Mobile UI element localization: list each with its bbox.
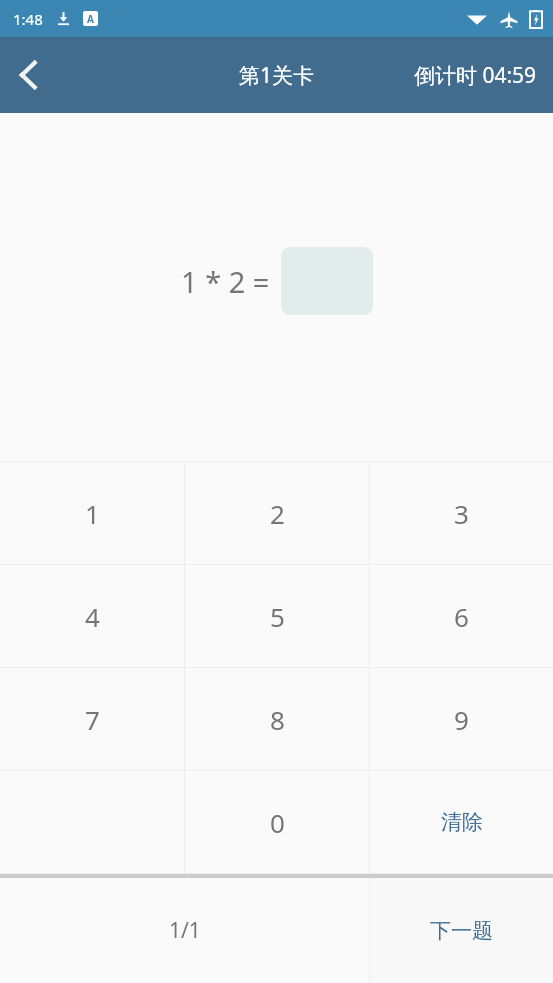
staticText: 1:48	[13, 9, 43, 29]
staticText: 1	[85, 496, 100, 531]
staticText: 1/1	[169, 916, 201, 945]
staticText: 第1关卡	[239, 61, 315, 90]
staticText: 清除	[441, 809, 483, 835]
staticText: 6	[454, 599, 469, 634]
button[interactable]: Back	[0, 47, 56, 103]
staticText: A	[87, 12, 94, 26]
staticText: 0	[270, 805, 285, 840]
staticText: 下一题	[430, 918, 493, 944]
staticText: 4	[85, 599, 100, 634]
button[interactable]: 2	[185, 462, 369, 564]
button[interactable]: 倒计时 04:59	[414, 61, 537, 90]
staticText: 3	[454, 496, 469, 531]
staticText: 2	[270, 496, 285, 531]
button[interactable]: 5	[185, 565, 369, 667]
staticText: 1 * 2 =	[181, 262, 270, 301]
staticText: 9	[454, 702, 469, 737]
button[interactable]: 6	[370, 565, 553, 667]
button[interactable]: 9	[370, 668, 553, 770]
staticText: 8	[270, 702, 285, 737]
button[interactable]: 7	[0, 668, 184, 770]
button[interactable]: 清除	[370, 771, 553, 873]
button[interactable]: 8	[185, 668, 369, 770]
staticText: 5	[270, 599, 285, 634]
button[interactable]: 3	[370, 462, 553, 564]
button[interactable]: 0	[185, 771, 369, 873]
button[interactable]: 4	[0, 565, 184, 667]
button[interactable]: 下一题	[370, 878, 553, 983]
staticText: 7	[85, 702, 100, 737]
button[interactable]: 1/1	[0, 878, 369, 983]
button[interactable]: 1	[0, 462, 184, 564]
staticText: 倒计时 04:59	[414, 61, 537, 90]
